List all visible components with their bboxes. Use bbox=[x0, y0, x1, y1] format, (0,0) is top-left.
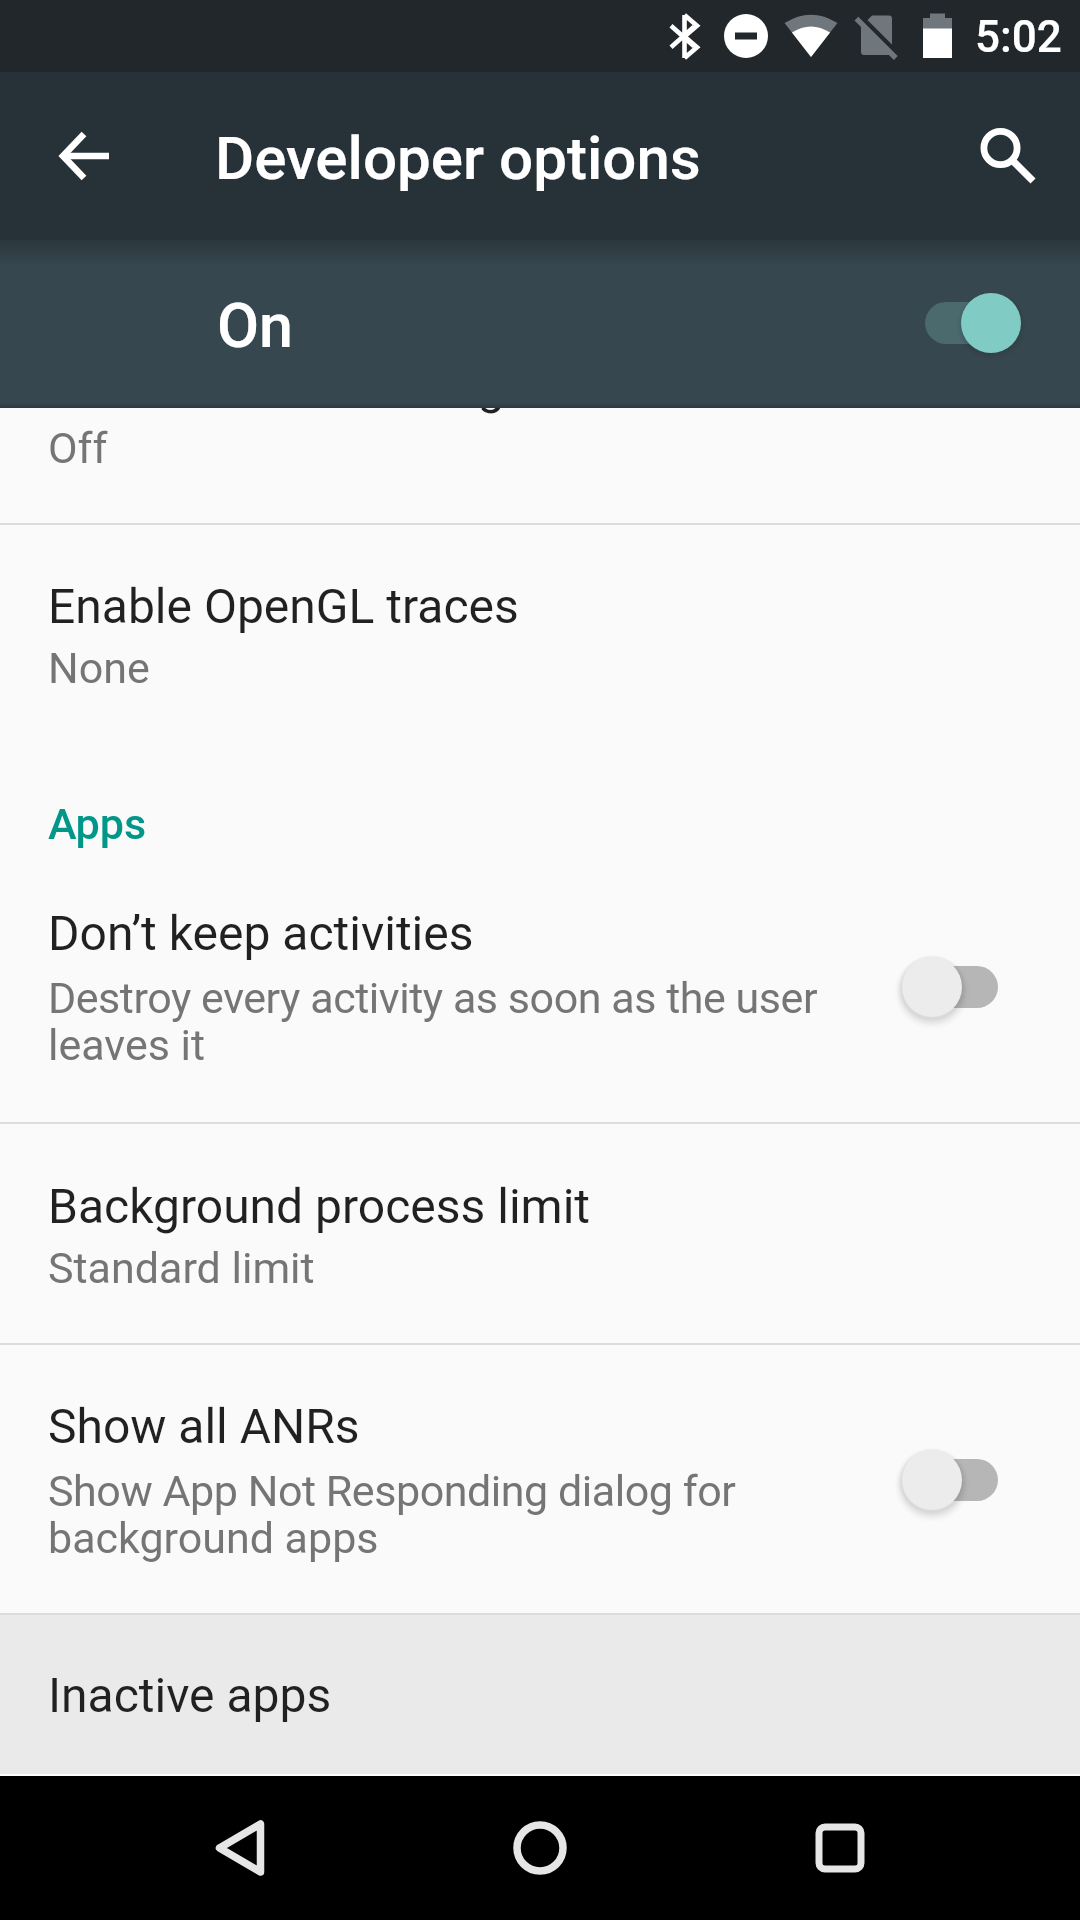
staticText: Profile GPU rendering bbox=[48, 358, 505, 414]
staticText: Don’t keep activities bbox=[48, 905, 474, 961]
staticText: Apps bbox=[48, 799, 147, 849]
staticText: Background process limit bbox=[48, 1178, 591, 1234]
button[interactable]: Don’t keep activities bbox=[0, 880, 1080, 1122]
staticText: Off bbox=[48, 423, 108, 473]
staticText: 5:02 bbox=[975, 11, 1062, 63]
staticText: Standard limit bbox=[48, 1243, 315, 1293]
button[interactable]: Profile GPU rendering bbox=[0, 300, 1080, 523]
button[interactable]: Back bbox=[168, 1776, 312, 1920]
staticText: Destroy every activity as soon as the us… bbox=[48, 973, 818, 1023]
button[interactable]: Background process limit bbox=[0, 1124, 1080, 1343]
button[interactable]: Inactive apps bbox=[0, 1615, 1080, 1774]
staticText: background apps bbox=[48, 1513, 379, 1563]
staticText: leaves it bbox=[48, 1020, 206, 1070]
staticText: Enable OpenGL traces bbox=[48, 578, 519, 634]
staticText: None bbox=[48, 643, 150, 693]
button[interactable]: On bbox=[0, 240, 1080, 408]
button[interactable]: Toggle setting bbox=[870, 915, 1030, 1059]
staticText: Developer options bbox=[215, 123, 701, 193]
button[interactable]: Show all ANRs bbox=[0, 1345, 1080, 1613]
staticText: Show all ANRs bbox=[48, 1398, 360, 1454]
staticText: On bbox=[217, 290, 294, 361]
button[interactable]: Home bbox=[468, 1776, 612, 1920]
button[interactable]: Recent apps bbox=[768, 1776, 912, 1920]
button[interactable]: Enable OpenGL traces bbox=[0, 525, 1080, 763]
staticText: Inactive apps bbox=[48, 1667, 332, 1723]
staticText: Show App Not Responding dialog for bbox=[48, 1466, 736, 1516]
button[interactable]: Toggle developer options bbox=[900, 251, 1060, 395]
button[interactable]: Toggle setting bbox=[870, 1408, 1030, 1552]
button[interactable]: Search bbox=[928, 84, 1072, 228]
button[interactable]: Navigate up bbox=[12, 84, 156, 228]
